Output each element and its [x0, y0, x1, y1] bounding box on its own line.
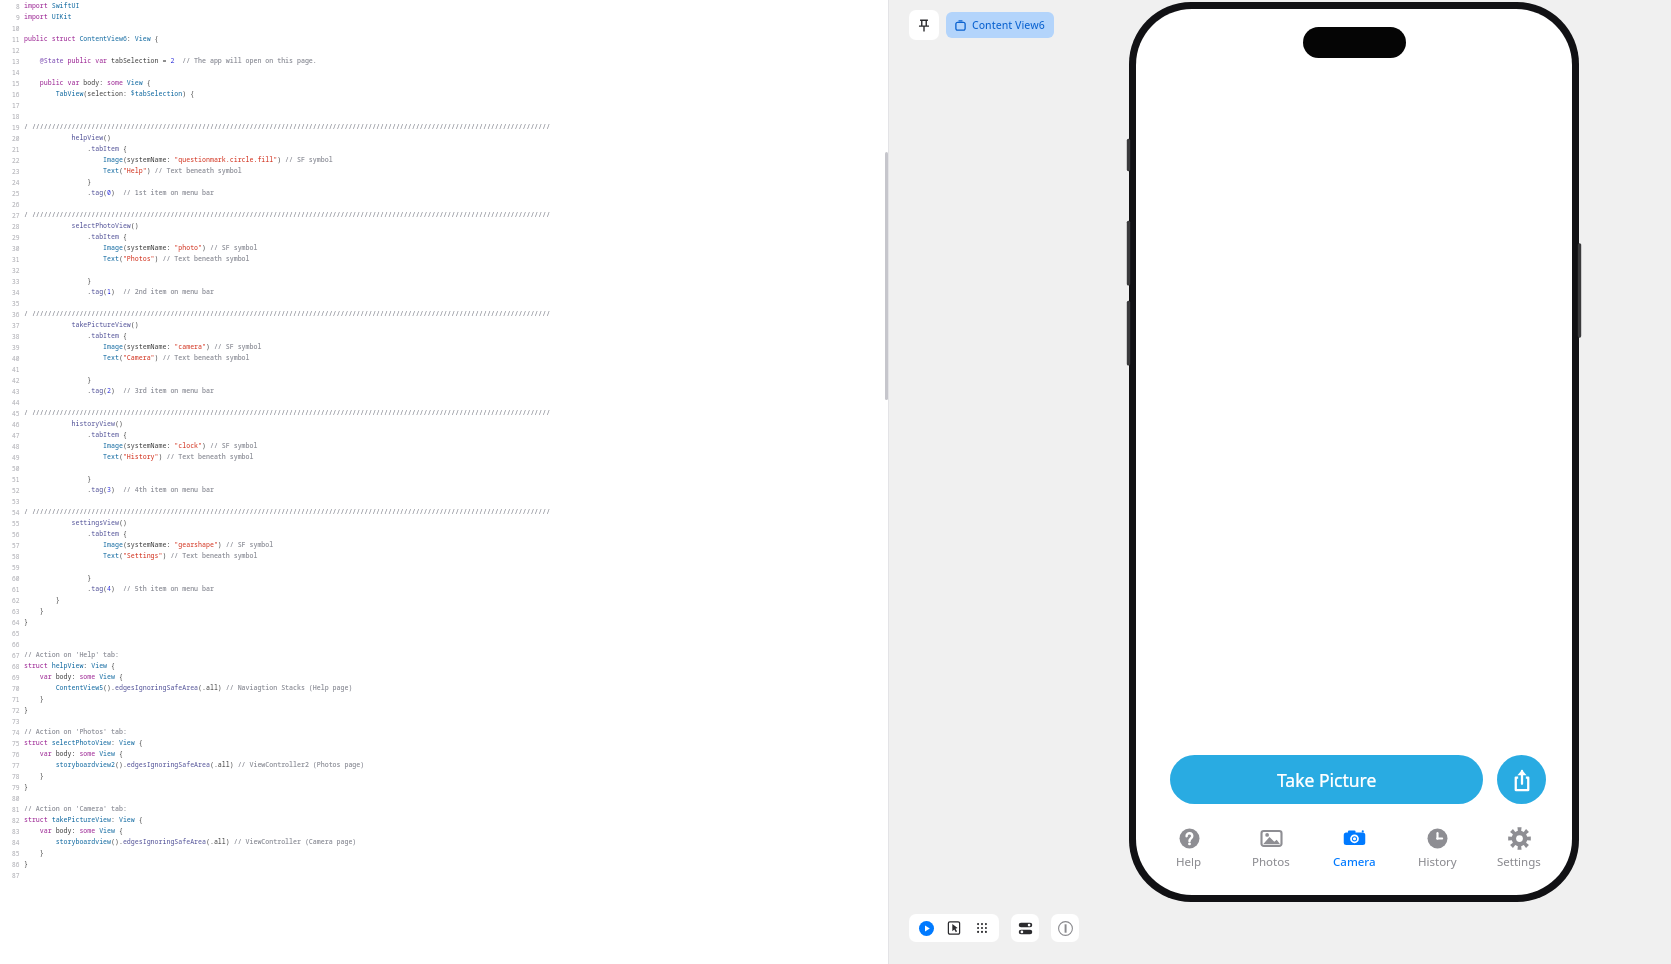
button[interactable]: Play preview: [915, 917, 937, 939]
staticText: 75: [12, 739, 20, 747]
staticText: historyView(): [24, 419, 123, 428]
staticText: 85: [12, 849, 20, 857]
button[interactable]: Camera: [1318, 824, 1390, 872]
staticText: Image(systemName: "questionmark.circle.f…: [24, 155, 333, 164]
button[interactable]: Help: [1153, 824, 1225, 872]
staticText: 80: [12, 794, 20, 802]
button[interactable]: Photos: [1235, 824, 1307, 872]
staticText: import UIKit: [24, 12, 72, 21]
staticText: 46: [12, 420, 20, 428]
staticText: 17: [12, 101, 20, 109]
staticText: 42: [12, 376, 20, 384]
staticText: 51: [12, 475, 20, 483]
staticText: 60: [12, 574, 20, 582]
staticText: 28: [12, 222, 20, 230]
staticText: 64: [12, 618, 20, 626]
staticText: 18: [12, 112, 20, 120]
staticText: .tag(2) // 3rd item on menu bar: [24, 386, 214, 395]
staticText: takePictureView(): [24, 320, 139, 329]
staticText: 86: [12, 860, 20, 868]
staticText: helpView(): [24, 133, 112, 142]
staticText: struct takePictureView: View {: [24, 815, 143, 824]
staticText: var body: some View {: [24, 672, 123, 681]
staticText: 23: [12, 167, 20, 175]
staticText: 67: [12, 651, 20, 659]
staticText: Help: [1176, 854, 1202, 870]
staticText: 31: [12, 255, 20, 263]
staticText: 48: [12, 442, 20, 450]
staticText: 57: [12, 541, 20, 549]
staticText: import SwiftUI: [24, 1, 80, 10]
staticText: 54: [12, 508, 20, 516]
staticText: 13: [12, 57, 20, 65]
button[interactable]: Pin preview: [909, 10, 939, 40]
button[interactable]: Device settings: [1011, 914, 1039, 942]
staticText: }: [24, 694, 44, 703]
button[interactable]: Content View6: [946, 12, 1054, 38]
staticText: / //////////////////////////////////////…: [24, 507, 551, 516]
staticText: 61: [12, 585, 20, 593]
staticText: }: [24, 848, 44, 857]
staticText: .tabItem {: [24, 430, 127, 439]
staticText: public var body: some View {: [24, 78, 151, 87]
staticText: 25: [12, 189, 20, 197]
staticText: .tabItem {: [24, 232, 127, 241]
staticText: 78: [12, 772, 20, 780]
staticText: .tag(1) // 2nd item on menu bar: [24, 287, 214, 296]
button[interactable]: Settings: [1483, 824, 1555, 872]
staticText: 52: [12, 486, 20, 494]
staticText: Take Picture: [1277, 768, 1377, 792]
staticText: 65: [12, 629, 20, 637]
staticText: 69: [12, 673, 20, 681]
staticText: 35: [12, 299, 20, 307]
staticText: Image(systemName: "photo") // SF symbol: [24, 243, 258, 252]
staticText: / //////////////////////////////////////…: [24, 210, 551, 219]
staticText: .tabItem {: [24, 529, 127, 538]
staticText: 43: [12, 387, 20, 395]
staticText: ContentView5().edgesIgnoringSafeArea(.al…: [24, 683, 353, 692]
staticText: 87: [12, 871, 20, 879]
staticText: 62: [12, 596, 20, 604]
button[interactable]: Share: [1497, 755, 1546, 804]
staticText: 40: [12, 354, 20, 362]
staticText: History: [1418, 854, 1457, 870]
staticText: 83: [12, 827, 20, 835]
staticText: }: [24, 859, 28, 868]
button[interactable]: Appearance: [1051, 914, 1079, 942]
staticText: Text("Help") // Text beneath symbol: [24, 166, 242, 175]
staticText: 71: [12, 695, 20, 703]
staticText: 38: [12, 332, 20, 340]
staticText: Text("Settings") // Text beneath symbol: [24, 551, 258, 560]
staticText: 79: [12, 783, 20, 791]
staticText: 45: [12, 409, 20, 417]
staticText: 32: [12, 266, 20, 274]
staticText: // Action on 'Photos' tab:: [24, 727, 127, 736]
staticText: .tag(0) // 1st item on menu bar: [24, 188, 214, 197]
staticText: }: [24, 617, 28, 626]
staticText: 73: [12, 717, 20, 725]
button[interactable]: Select: [943, 917, 965, 939]
staticText: 84: [12, 838, 20, 846]
staticText: }: [24, 177, 92, 186]
staticText: 22: [12, 156, 20, 164]
staticText: 10: [12, 24, 20, 32]
staticText: Image(systemName: "camera") // SF symbol: [24, 342, 262, 351]
staticText: 21: [12, 145, 20, 153]
staticText: 16: [12, 90, 20, 98]
staticText: 82: [12, 816, 20, 824]
staticText: / //////////////////////////////////////…: [24, 122, 551, 131]
staticText: 9: [16, 13, 20, 21]
staticText: 53: [12, 497, 20, 505]
staticText: }: [24, 573, 92, 582]
staticText: 56: [12, 530, 20, 538]
button[interactable]: Take Picture: [1170, 755, 1483, 804]
staticText: 39: [12, 343, 20, 351]
staticText: 12: [12, 46, 20, 54]
staticText: 81: [12, 805, 20, 813]
staticText: }: [24, 705, 28, 714]
staticText: 11: [12, 35, 20, 43]
button[interactable]: Variants: [971, 917, 993, 939]
staticText: }: [24, 595, 60, 604]
staticText: Text("History") // Text beneath symbol: [24, 452, 254, 461]
button[interactable]: History: [1401, 824, 1473, 872]
